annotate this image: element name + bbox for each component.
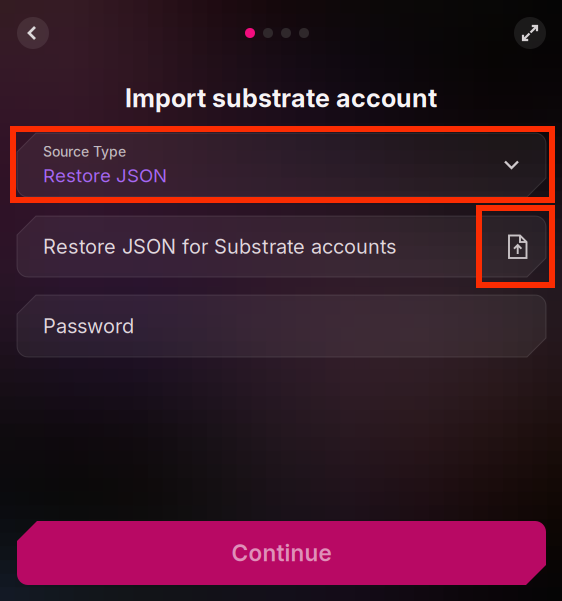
button[interactable]: Continue bbox=[17, 521, 546, 585]
staticText: Source Type bbox=[43, 143, 126, 160]
button[interactable]: Back bbox=[17, 17, 49, 49]
button[interactable]: Password bbox=[17, 295, 546, 357]
button[interactable]: Source Type bbox=[17, 133, 546, 197]
staticText: Password bbox=[43, 314, 134, 338]
button[interactable]: Restore JSON for Substrate accounts bbox=[17, 216, 546, 277]
staticText: Import substrate account bbox=[125, 83, 437, 113]
staticText: Restore JSON for Substrate accounts bbox=[43, 234, 396, 259]
staticText: Restore JSON bbox=[43, 164, 167, 187]
button[interactable]: Expand bbox=[514, 17, 546, 49]
staticText: Continue bbox=[231, 539, 331, 567]
button[interactable]: Upload JSON file bbox=[498, 227, 538, 267]
